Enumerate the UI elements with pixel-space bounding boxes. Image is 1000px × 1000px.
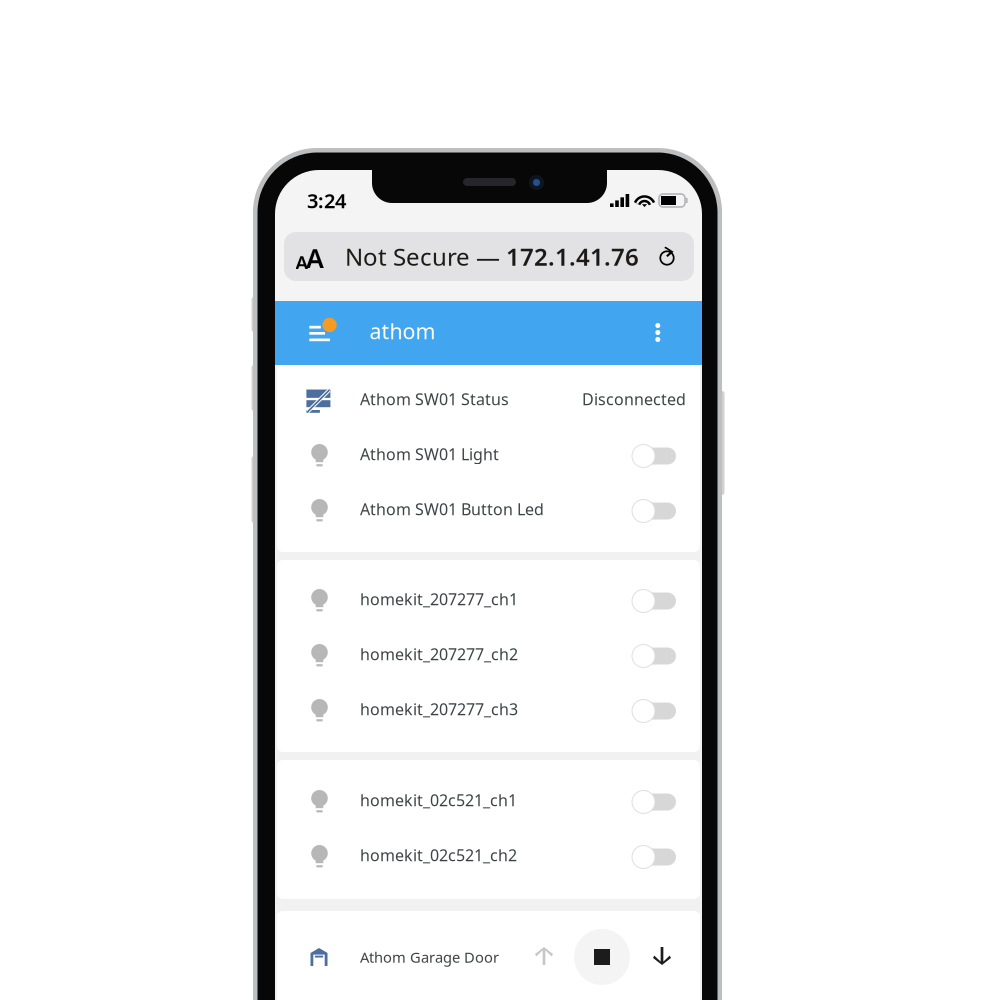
button[interactable]: Athom SW01 Status — [277, 373, 700, 428]
staticText: A — [295, 250, 308, 274]
staticText: homekit_207277_ch3 — [360, 698, 518, 720]
staticText: Athom SW01 Button Led — [360, 498, 544, 520]
button[interactable]: Reload — [648, 232, 688, 281]
button[interactable]: Open garage door — [522, 934, 566, 978]
button[interactable]: homekit_207277_ch3 — [277, 683, 700, 738]
staticText: Not Secure — 172.1.41.76 — [345, 241, 639, 272]
staticText: Disconnected — [582, 388, 686, 410]
button[interactable]: homekit_207277_ch1 — [277, 573, 700, 628]
button[interactable]: Stop garage door — [574, 929, 630, 985]
button[interactable]: Athom SW01 Button Led — [277, 483, 700, 538]
staticText: homekit_207277_ch1 — [360, 588, 518, 610]
staticText: athom — [369, 317, 435, 345]
button[interactable]: Menu — [309, 312, 349, 352]
button[interactable]: Close garage door — [640, 934, 684, 978]
button[interactable]: homekit_02c521_ch1 — [277, 774, 700, 829]
staticText: homekit_02c521_ch1 — [360, 789, 517, 811]
staticText: homekit_02c521_ch2 — [360, 844, 517, 866]
button[interactable]: More options — [638, 315, 678, 355]
button[interactable]: Athom SW01 Light — [277, 428, 700, 483]
staticText: Athom SW01 Status — [360, 388, 509, 410]
staticText: A — [306, 240, 324, 276]
button[interactable]: Page settings — [286, 232, 330, 281]
staticText: 3:24 — [307, 187, 346, 214]
staticText: homekit_207277_ch2 — [360, 643, 518, 665]
button[interactable]: homekit_207277_ch2 — [277, 628, 700, 683]
button[interactable]: homekit_02c521_ch2 — [277, 829, 700, 884]
staticText: Athom Garage Door — [360, 947, 499, 967]
staticText: Athom SW01 Light — [360, 443, 499, 465]
